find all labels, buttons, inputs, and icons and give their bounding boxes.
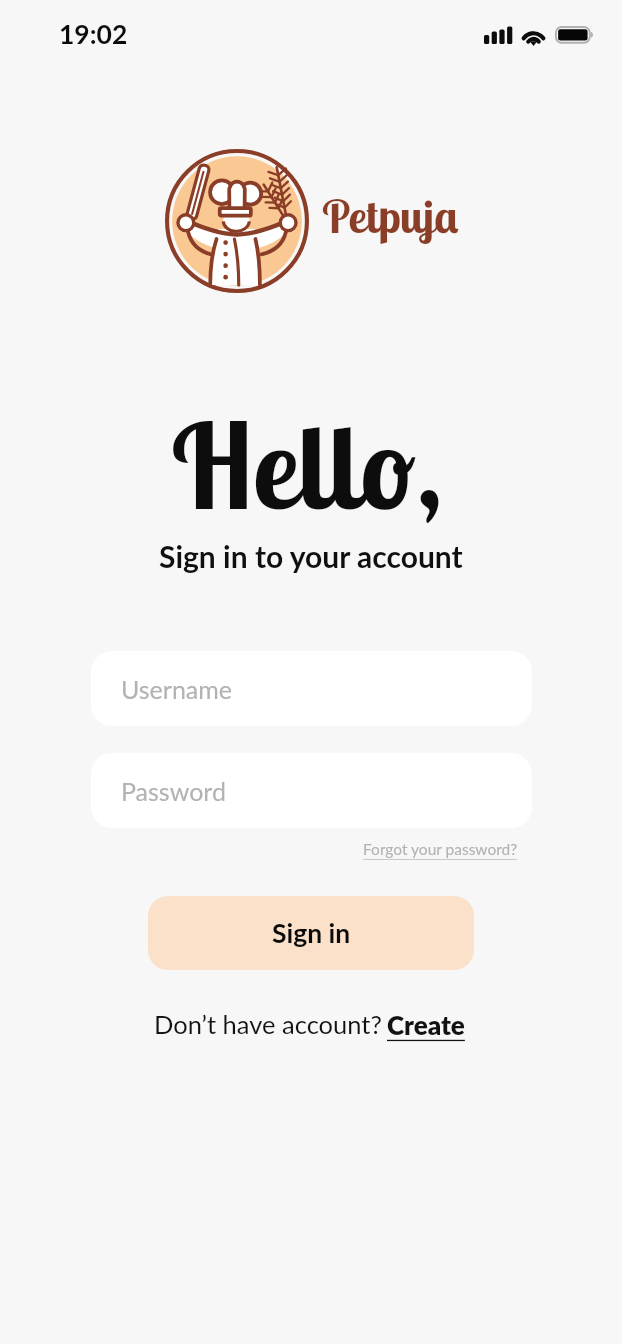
staticText: Username	[121, 674, 233, 704]
button[interactable]: Sign in	[148, 896, 474, 970]
staticText: Hello,	[171, 392, 444, 538]
staticText: Don’t have account?	[154, 1009, 382, 1040]
button[interactable]: Create	[382, 1005, 467, 1044]
staticText: 19:02	[59, 18, 128, 50]
staticText: Sign in	[272, 917, 351, 949]
other: Battery	[555, 26, 592, 45]
staticText: Petpuja	[322, 187, 459, 245]
button[interactable]: Password	[91, 753, 532, 828]
other: Cellular signal	[484, 26, 511, 44]
staticText: Forgot your password?	[363, 840, 518, 859]
button[interactable]: Forgot your password?	[355, 832, 526, 867]
staticText: Sign in to your account	[159, 538, 463, 574]
button[interactable]: Username	[91, 651, 532, 726]
other: Wi-Fi	[520, 24, 547, 45]
staticText: Create	[387, 1009, 465, 1040]
staticText: Password	[121, 776, 226, 806]
